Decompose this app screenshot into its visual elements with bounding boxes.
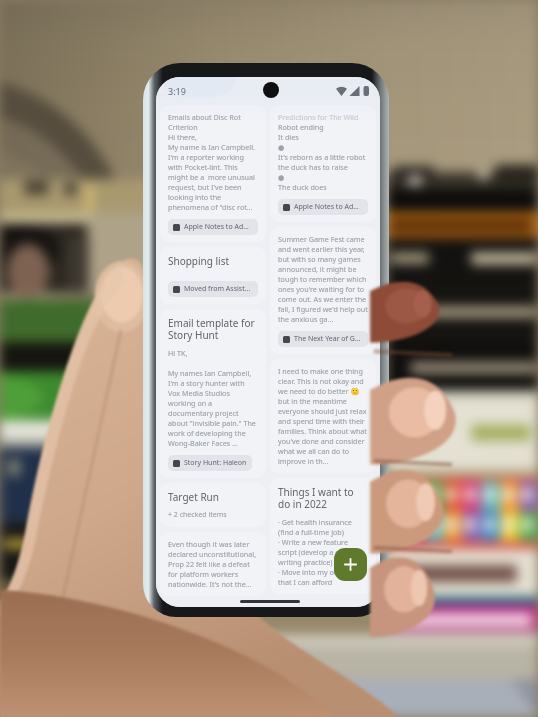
staticText: Emails about Disc Rot Criterion Hi there…	[168, 112, 258, 212]
staticText: The Next Year of Ga…	[294, 334, 363, 344]
staticText: 3:19	[168, 85, 186, 97]
staticText: + 2 checked items	[168, 510, 227, 520]
button[interactable]: Things I want to do in 2022	[270, 478, 376, 594]
button[interactable]: Even though it was later declared uncons…	[160, 532, 266, 596]
button[interactable]: Predictions for The Wild	[270, 105, 376, 222]
staticText: Shopping list	[168, 254, 230, 268]
staticText: Apple Notes to Add …	[184, 222, 253, 232]
staticText: Even though it was later declared uncons…	[168, 539, 258, 589]
staticText: Predictions for The Wild	[278, 112, 359, 122]
staticText: Story Hunt: Haleon	[184, 458, 247, 468]
staticText: · Get health insurance (find a full-time…	[278, 517, 368, 587]
button[interactable]: Target Run	[160, 483, 266, 527]
staticText: Summer Game Fest came and went earlier t…	[278, 234, 368, 324]
button[interactable]: Email template for Story Hunt	[160, 309, 266, 478]
staticText: Apple Notes to Add …	[294, 202, 363, 212]
button[interactable]: Create new note	[334, 548, 367, 581]
staticText: Email template for Story Hunt	[168, 316, 258, 342]
staticText: Target Run	[168, 490, 219, 504]
button[interactable]: Emails about Disc Rot Criterion Hi there…	[160, 105, 266, 242]
button[interactable]: Summer Game Fest came and went earlier t…	[270, 227, 376, 354]
staticText: Robot ending It dies ● It's reborn as a …	[278, 122, 368, 192]
staticText: Things I want to do in 2022	[278, 485, 368, 511]
button[interactable]: Shopping list	[160, 247, 266, 304]
staticText: Moved from Assistant	[184, 284, 253, 294]
staticText: I need to make one thing clear. This is …	[278, 366, 368, 466]
staticText: Hi TK, My names Ian Campbell, I'm a stor…	[168, 348, 258, 448]
button[interactable]: I need to make one thing clear. This is …	[270, 359, 376, 473]
